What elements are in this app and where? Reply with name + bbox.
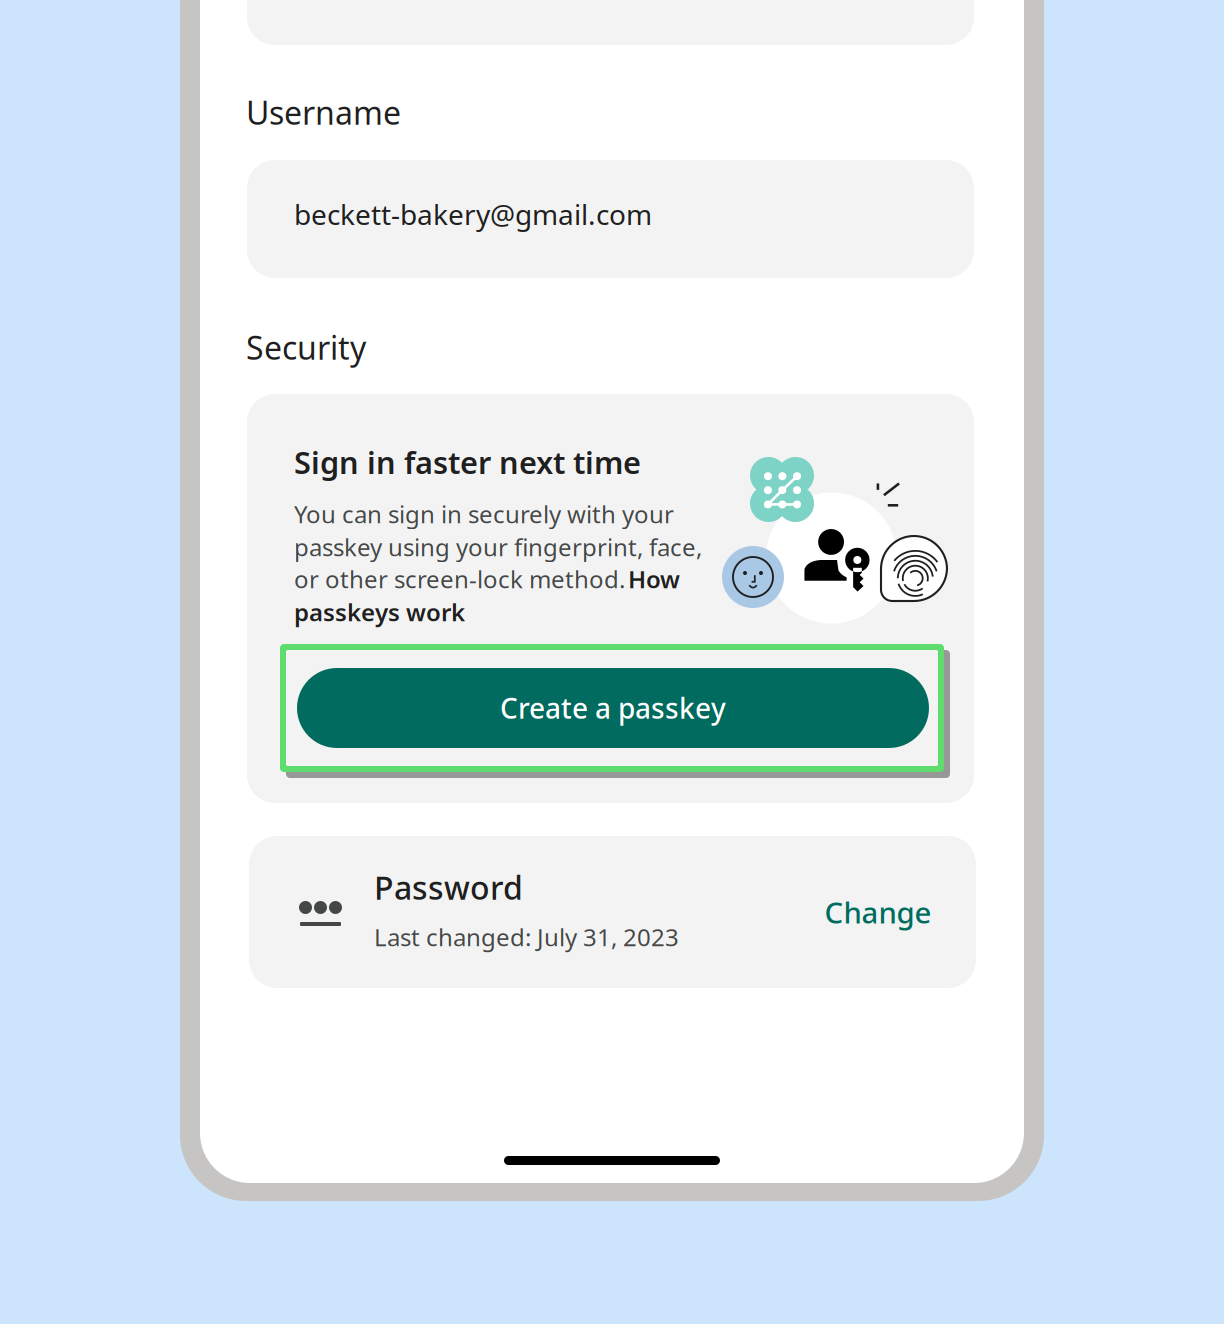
staticText: Password (374, 866, 523, 909)
staticText: You can sign in securely with your (294, 498, 674, 530)
staticText: or other screen-lock method. (294, 563, 625, 595)
button[interactable]: Create a passkey (280, 644, 956, 778)
staticText: passkeys work (294, 596, 465, 628)
button[interactable]: Change (804, 880, 952, 944)
staticText: Security (246, 326, 366, 369)
staticText: How (628, 563, 680, 595)
button[interactable]: How passkeys work (294, 563, 694, 619)
staticText: Last changed: July 31, 2023 (374, 921, 679, 953)
staticText: Create a passkey (500, 689, 726, 727)
staticText: beckett-bakery@gmail.com (294, 195, 652, 233)
staticText: passkey using your fingerprint, face, (294, 531, 702, 563)
staticText: Change (824, 892, 931, 931)
staticText: Username (246, 91, 401, 134)
staticText: Sign in faster next time (294, 442, 641, 482)
